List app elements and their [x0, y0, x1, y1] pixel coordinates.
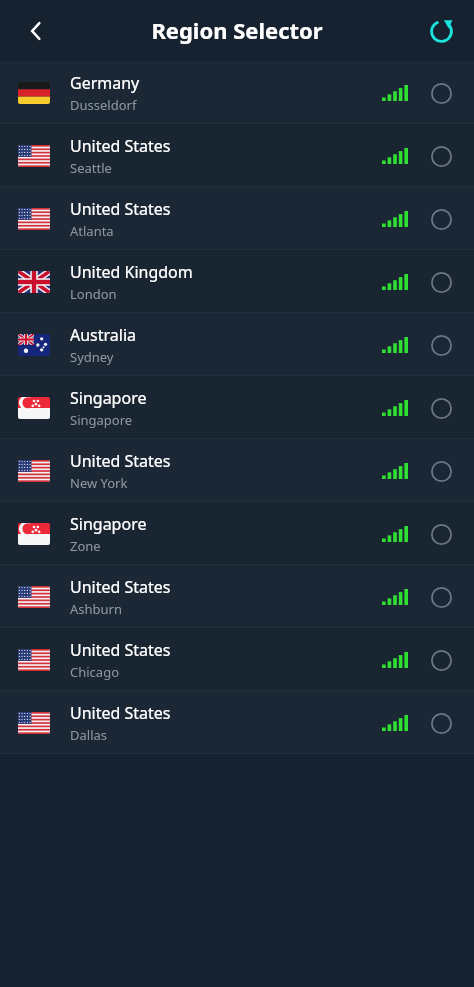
- staticText: London: [70, 285, 117, 303]
- button[interactable]: Select United States Ashburn: [424, 580, 458, 614]
- staticText: Dallas: [70, 726, 108, 744]
- staticText: Sydney: [70, 348, 114, 366]
- button[interactable]: Germany: [0, 61, 474, 124]
- button[interactable]: Australia: [0, 313, 474, 376]
- button[interactable]: Select United States Dallas: [424, 706, 458, 740]
- button[interactable]: Select Singapore Singapore: [424, 391, 458, 425]
- button[interactable]: Refresh: [416, 6, 466, 56]
- button[interactable]: United States: [0, 565, 474, 628]
- button[interactable]: Select United States Seattle: [424, 139, 458, 173]
- staticText: Region Selector: [151, 15, 323, 45]
- staticText: United States: [70, 639, 171, 661]
- button[interactable]: Select Australia Sydney: [424, 328, 458, 362]
- staticText: United Kingdom: [70, 261, 193, 283]
- staticText: United States: [70, 450, 171, 472]
- staticText: Ashburn: [70, 600, 123, 618]
- staticText: Chicago: [70, 663, 119, 681]
- staticText: Dusseldorf: [70, 96, 137, 114]
- staticText: Germany: [70, 72, 140, 94]
- button[interactable]: Singapore: [0, 502, 474, 565]
- staticText: United States: [70, 198, 171, 220]
- button[interactable]: Select United States Chicago: [424, 643, 458, 677]
- staticText: Atlanta: [70, 222, 114, 240]
- staticText: United States: [70, 576, 171, 598]
- button[interactable]: Select Germany Dusseldorf: [424, 76, 458, 110]
- staticText: Australia: [70, 324, 137, 346]
- button[interactable]: Singapore: [0, 376, 474, 439]
- button[interactable]: United Kingdom: [0, 250, 474, 313]
- button[interactable]: United States: [0, 187, 474, 250]
- staticText: United States: [70, 135, 171, 157]
- button[interactable]: United States: [0, 124, 474, 187]
- button[interactable]: Select Singapore Zone: [424, 517, 458, 551]
- staticText: United States: [70, 702, 171, 724]
- staticText: Singapore: [70, 387, 147, 409]
- button[interactable]: Back: [10, 5, 62, 57]
- staticText: New York: [70, 474, 128, 492]
- button[interactable]: Select United States Atlanta: [424, 202, 458, 236]
- staticText: Seattle: [70, 159, 112, 177]
- button[interactable]: United States: [0, 691, 474, 754]
- staticText: Singapore: [70, 411, 133, 429]
- staticText: Singapore: [70, 513, 147, 535]
- button[interactable]: Select United Kingdom London: [424, 265, 458, 299]
- button[interactable]: United States: [0, 628, 474, 691]
- button[interactable]: United States: [0, 439, 474, 502]
- staticText: Zone: [70, 537, 101, 555]
- button[interactable]: Select United States New York: [424, 454, 458, 488]
